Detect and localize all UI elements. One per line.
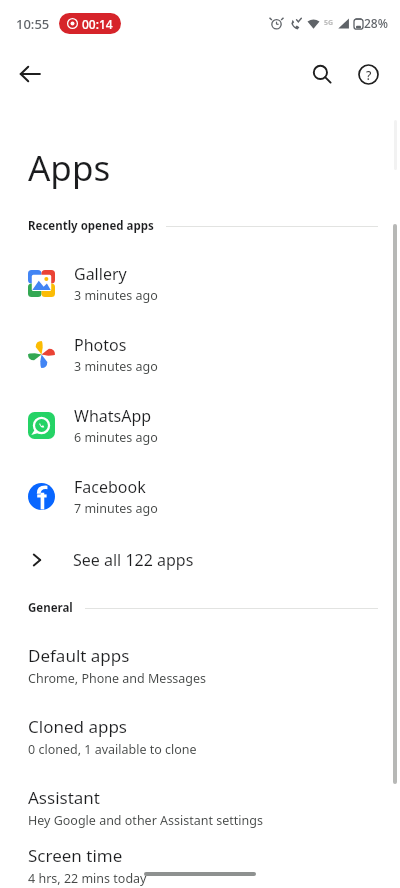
button[interactable]: Screen time xyxy=(0,843,400,888)
staticText: 0 cloned, 1 available to clone xyxy=(28,741,197,758)
staticText: 00:14 xyxy=(82,16,113,32)
staticText: Apps xyxy=(28,144,111,192)
button[interactable]: Photos xyxy=(0,319,400,390)
staticText: 7 minutes ago xyxy=(74,500,158,517)
button[interactable]: Help xyxy=(346,52,390,96)
staticText: 4 hrs, 22 mins today xyxy=(28,870,147,887)
staticText: Facebook xyxy=(74,476,146,498)
staticText: Photos xyxy=(74,334,127,356)
button[interactable]: Search xyxy=(300,52,344,96)
button[interactable]: See all 122 apps xyxy=(0,532,400,588)
staticText: 28% xyxy=(364,15,388,31)
staticText: Recently opened apps xyxy=(28,218,154,234)
button[interactable]: Cloned apps xyxy=(0,701,400,772)
staticText: See all 122 apps xyxy=(73,549,194,571)
staticText: Default apps xyxy=(28,644,130,667)
staticText: Gallery xyxy=(74,263,127,285)
staticText: 3 minutes ago xyxy=(74,287,158,304)
staticText: Hey Google and other Assistant settings xyxy=(28,812,263,829)
staticText: WhatsApp xyxy=(74,405,152,427)
staticText: Chrome, Phone and Messages xyxy=(28,670,207,687)
staticText: Assistant xyxy=(28,786,100,809)
staticText: General xyxy=(28,600,73,616)
staticText: ? xyxy=(366,67,372,83)
staticText: 5G xyxy=(324,18,334,28)
button[interactable]: Gallery xyxy=(0,248,400,319)
staticText: 6 minutes ago xyxy=(74,429,158,446)
button[interactable]: WhatsApp xyxy=(0,390,400,461)
button[interactable]: Assistant xyxy=(0,772,400,843)
staticText: 10:55 xyxy=(16,15,50,33)
staticText: 3 minutes ago xyxy=(74,358,158,375)
staticText: Screen time xyxy=(28,844,123,867)
staticText: Cloned apps xyxy=(28,715,127,738)
button[interactable]: Facebook xyxy=(0,461,400,532)
button[interactable]: Default apps xyxy=(0,630,400,701)
button[interactable]: Back xyxy=(8,52,52,96)
